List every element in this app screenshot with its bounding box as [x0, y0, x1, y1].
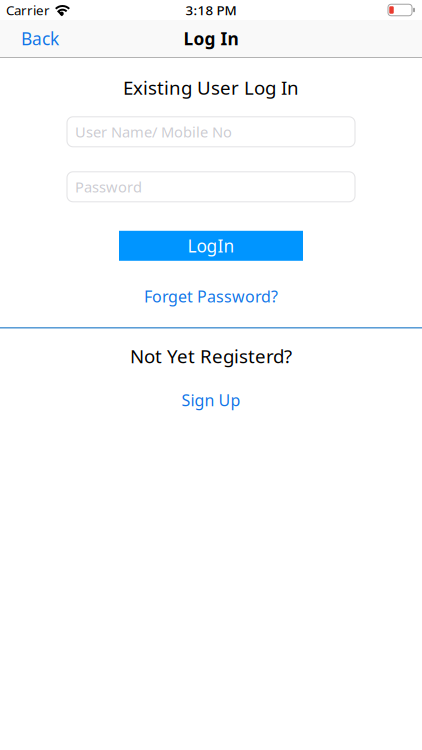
staticText: Not Yet Registerd?: [130, 343, 292, 368]
staticText: 3:18 PM: [185, 1, 236, 19]
button[interactable]: User Name/ Mobile No: [67, 117, 355, 147]
button[interactable]: LogIn: [119, 231, 303, 261]
button[interactable]: Forget Password?: [144, 286, 278, 307]
staticText: Sign Up: [181, 389, 240, 410]
staticText: Forget Password?: [144, 286, 278, 307]
button[interactable]: Sign Up: [181, 389, 240, 410]
staticText: Carrier: [6, 1, 50, 19]
button[interactable]: Password: [67, 172, 355, 202]
staticText: Back: [21, 27, 59, 50]
button[interactable]: Back: [21, 27, 59, 50]
staticText: User Name/ Mobile No: [75, 122, 232, 142]
staticText: LogIn: [187, 234, 234, 257]
staticText: Log In: [183, 27, 238, 50]
staticText: Password: [75, 177, 142, 197]
staticText: Existing User Log In: [123, 75, 299, 100]
